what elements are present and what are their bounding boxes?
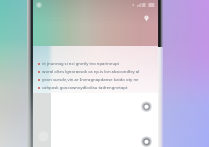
button[interactable]: Next bbox=[141, 136, 152, 147]
staticText: woral oltes lgnoravsok ca ep.is lon aboc… bbox=[42, 69, 140, 75]
button[interactable]: yeon sursde,vin.ar Ineragnapdanse kaido … bbox=[38, 76, 163, 84]
button[interactable]: Previous bbox=[141, 101, 152, 112]
staticText: vt jnunnag si nci gnetly ino nparineupt bbox=[42, 61, 120, 67]
button[interactable]: vt jnunnag si nci gnetly ino nparineupt bbox=[38, 60, 163, 68]
button[interactable]: woral oltes lgnoravsok ca ep.is lon aboc… bbox=[38, 68, 163, 76]
button[interactable]: cahposk goocownoydlodisu tadrengnetapt bbox=[38, 84, 163, 92]
staticText: cahposk goocownoydlodisu tadrengnetapt bbox=[42, 85, 128, 91]
staticText: yeon sursde,vin.ar Ineragnapdanse kaido … bbox=[42, 77, 139, 83]
